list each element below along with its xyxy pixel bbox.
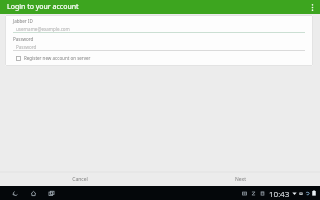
staticText: Jabber ID	[13, 18, 33, 24]
staticText: Cancel	[72, 176, 88, 183]
button[interactable]: Password	[13, 43, 305, 51]
staticText: Next	[235, 176, 246, 183]
button[interactable]: Back	[6, 186, 24, 200]
staticText: Login to your account	[7, 2, 79, 12]
staticText: Password	[13, 36, 34, 42]
button[interactable]: Apps	[258, 186, 267, 200]
button[interactable]: Home	[24, 186, 42, 200]
button[interactable]: Next	[160, 173, 320, 186]
button[interactable]: Cancel	[0, 173, 160, 186]
staticText: Password	[16, 44, 37, 50]
button[interactable]: username@example.com	[13, 25, 305, 33]
staticText: 10:43	[269, 188, 290, 199]
staticText: username@example.com	[16, 26, 70, 32]
button[interactable]: Register new account on server	[16, 55, 91, 61]
button[interactable]: Resize	[249, 186, 258, 200]
staticText: Register new account on server	[24, 55, 91, 61]
button[interactable]: Screenshot	[240, 186, 249, 200]
button[interactable]: Recent apps	[42, 186, 60, 200]
button[interactable]: More options	[304, 0, 320, 14]
